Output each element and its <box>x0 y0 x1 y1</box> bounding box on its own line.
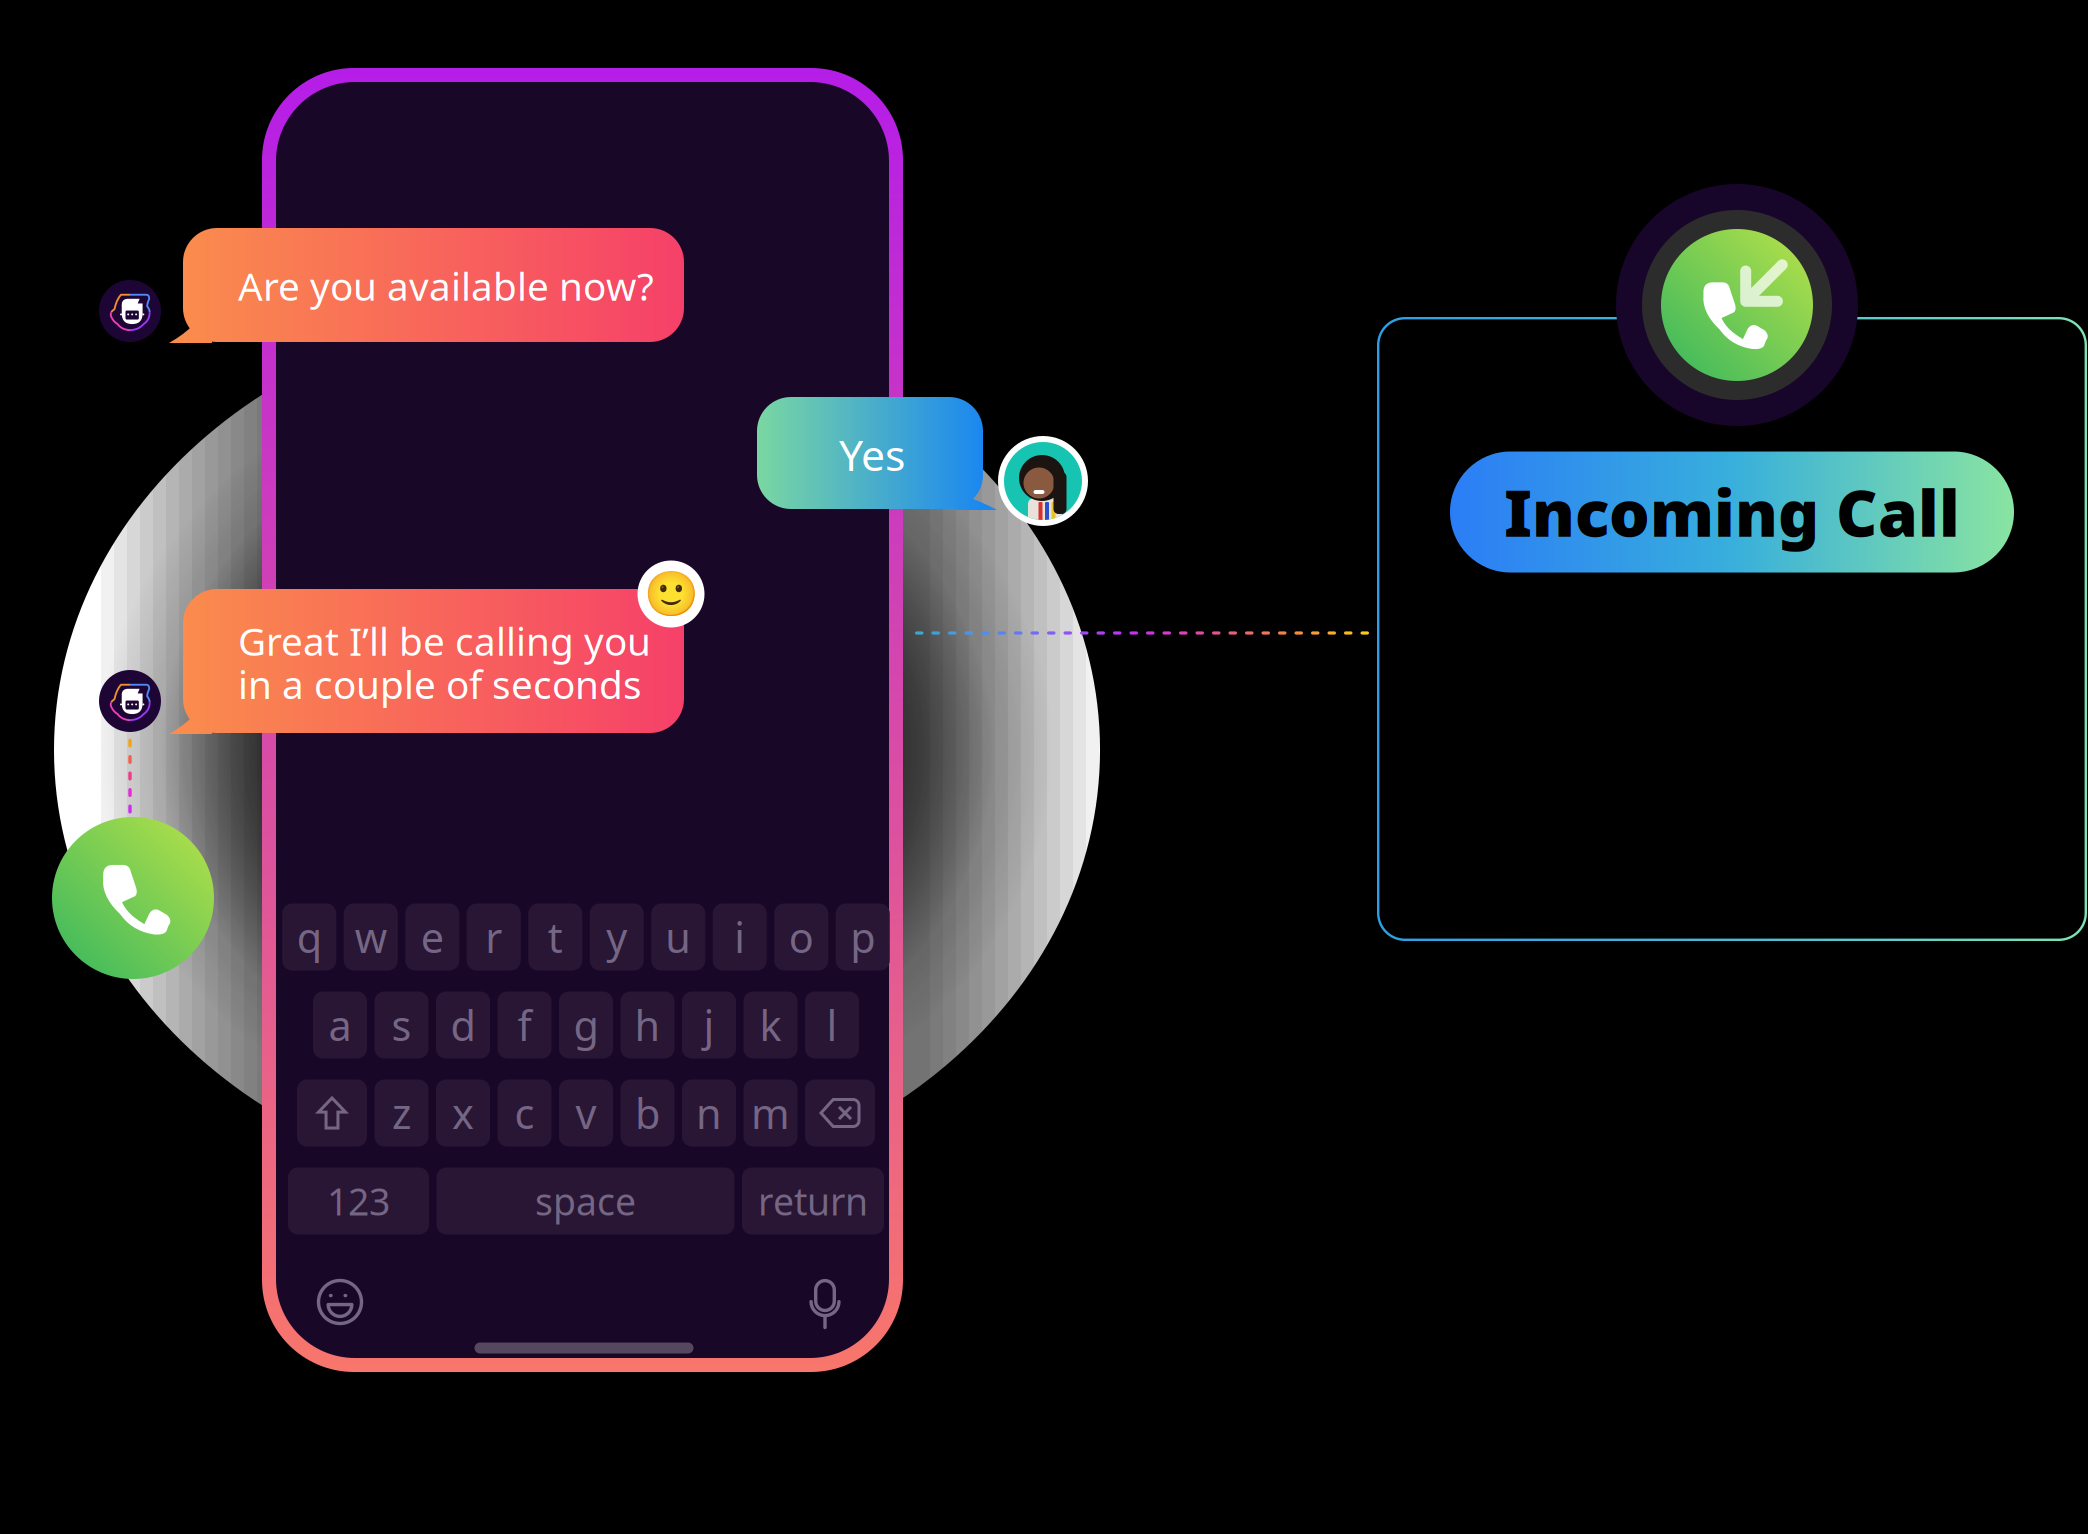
button[interactable]: p <box>836 903 890 970</box>
staticText: 123 <box>327 1176 390 1226</box>
button[interactable]: q <box>282 903 336 970</box>
staticText: s <box>391 998 411 1052</box>
button[interactable]: s <box>374 991 428 1058</box>
staticText: Are you available now? <box>238 260 654 311</box>
staticText: h <box>634 998 660 1052</box>
staticText: m <box>751 1086 790 1140</box>
button[interactable]: t <box>528 903 582 970</box>
staticText: o <box>789 910 814 964</box>
button[interactable]: Delete <box>805 1079 875 1146</box>
button[interactable]: Emoji <box>318 1280 361 1323</box>
staticText: c <box>514 1086 534 1140</box>
button[interactable]: Dictate <box>809 1280 840 1327</box>
staticText: z <box>392 1086 411 1140</box>
button[interactable]: n <box>682 1079 736 1146</box>
button[interactable]: z <box>374 1079 428 1146</box>
button[interactable]: y <box>590 903 644 970</box>
staticText: k <box>759 998 781 1052</box>
staticText: u <box>665 910 691 964</box>
staticText: q <box>297 910 322 964</box>
staticText: w <box>355 910 387 964</box>
button[interactable]: l <box>805 991 859 1058</box>
button[interactable]: o <box>774 903 828 970</box>
staticText: b <box>635 1086 660 1140</box>
staticText: space <box>535 1176 636 1226</box>
button[interactable]: Call <box>52 817 214 979</box>
staticText: a <box>328 998 351 1052</box>
button[interactable]: c <box>497 1079 551 1146</box>
staticText: return <box>758 1176 868 1226</box>
staticText: x <box>452 1086 474 1140</box>
staticText: v <box>575 1086 596 1140</box>
button[interactable]: f <box>497 991 551 1058</box>
button[interactable]: k <box>743 991 797 1058</box>
button[interactable]: return <box>742 1167 884 1234</box>
staticText: r <box>485 910 502 964</box>
button[interactable]: a <box>313 991 367 1058</box>
staticText: t <box>548 910 563 964</box>
staticText: in a couple of seconds <box>238 658 642 710</box>
staticText: f <box>517 998 531 1052</box>
staticText: Great I’ll be calling you <box>238 615 651 666</box>
staticText: e <box>421 910 444 964</box>
button[interactable]: 123 <box>288 1167 429 1234</box>
staticText: Incoming Call <box>1504 469 1960 554</box>
staticText: Yes <box>839 426 905 483</box>
button[interactable]: b <box>620 1079 674 1146</box>
button[interactable]: g <box>559 991 613 1058</box>
staticText: y <box>606 910 627 964</box>
button[interactable]: d <box>436 991 490 1058</box>
staticText: j <box>703 998 714 1052</box>
button[interactable]: x <box>436 1079 490 1146</box>
button[interactable]: e <box>405 903 459 970</box>
button[interactable]: r <box>467 903 521 970</box>
staticText: 🙂 <box>643 569 698 619</box>
button[interactable]: i <box>713 903 767 970</box>
button[interactable]: m <box>743 1079 797 1146</box>
staticText: i <box>734 910 745 964</box>
button[interactable]: u <box>651 903 705 970</box>
button[interactable]: j <box>682 991 736 1058</box>
button[interactable]: space <box>436 1167 734 1234</box>
staticText: n <box>696 1086 722 1140</box>
button[interactable]: w <box>344 903 398 970</box>
staticText: p <box>850 910 875 964</box>
button[interactable]: h <box>620 991 674 1058</box>
button[interactable]: v <box>559 1079 613 1146</box>
button[interactable]: Shift <box>297 1079 367 1146</box>
staticText: g <box>573 998 598 1052</box>
staticText: d <box>450 998 475 1052</box>
staticText: l <box>826 998 837 1052</box>
